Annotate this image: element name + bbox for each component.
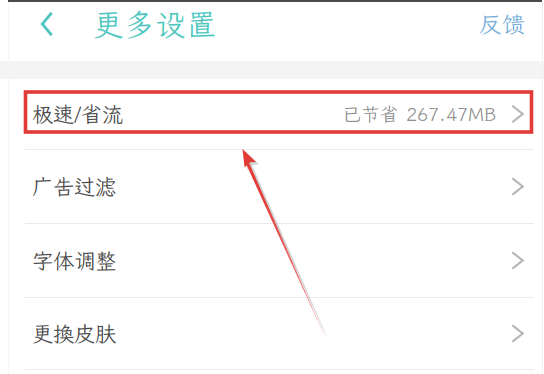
button[interactable]: 极速/省流 bbox=[0, 79, 544, 150]
staticText: 更多设置 bbox=[93, 4, 217, 44]
staticText: 广告过滤 bbox=[32, 172, 116, 201]
button[interactable]: 反馈 bbox=[479, 0, 544, 48]
button[interactable]: 广告过滤 bbox=[0, 150, 544, 224]
button[interactable]: 更换皮肤 bbox=[0, 298, 544, 370]
button[interactable]: 字体调整 bbox=[0, 224, 544, 298]
staticText: 极速/省流 bbox=[32, 100, 123, 128]
staticText: 已节省 267.47MB bbox=[342, 102, 496, 126]
staticText: 更换皮肤 bbox=[32, 319, 116, 348]
button[interactable]: Back bbox=[0, 0, 67, 48]
staticText: 反馈 bbox=[479, 9, 525, 39]
staticText: 字体调整 bbox=[32, 246, 116, 275]
